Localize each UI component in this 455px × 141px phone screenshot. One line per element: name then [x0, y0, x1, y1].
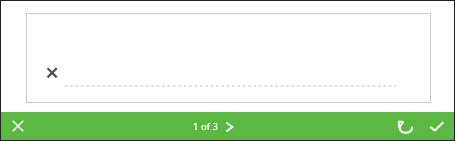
button[interactable]: Cancel	[1, 112, 35, 140]
staticText: ✕	[45, 63, 60, 83]
button[interactable]: ✕	[26, 13, 431, 103]
button[interactable]: 1 of 3	[187, 117, 239, 136]
button[interactable]: Accept	[420, 112, 452, 140]
button[interactable]: Undo	[390, 112, 420, 140]
staticText: 1 of 3	[193, 120, 218, 133]
